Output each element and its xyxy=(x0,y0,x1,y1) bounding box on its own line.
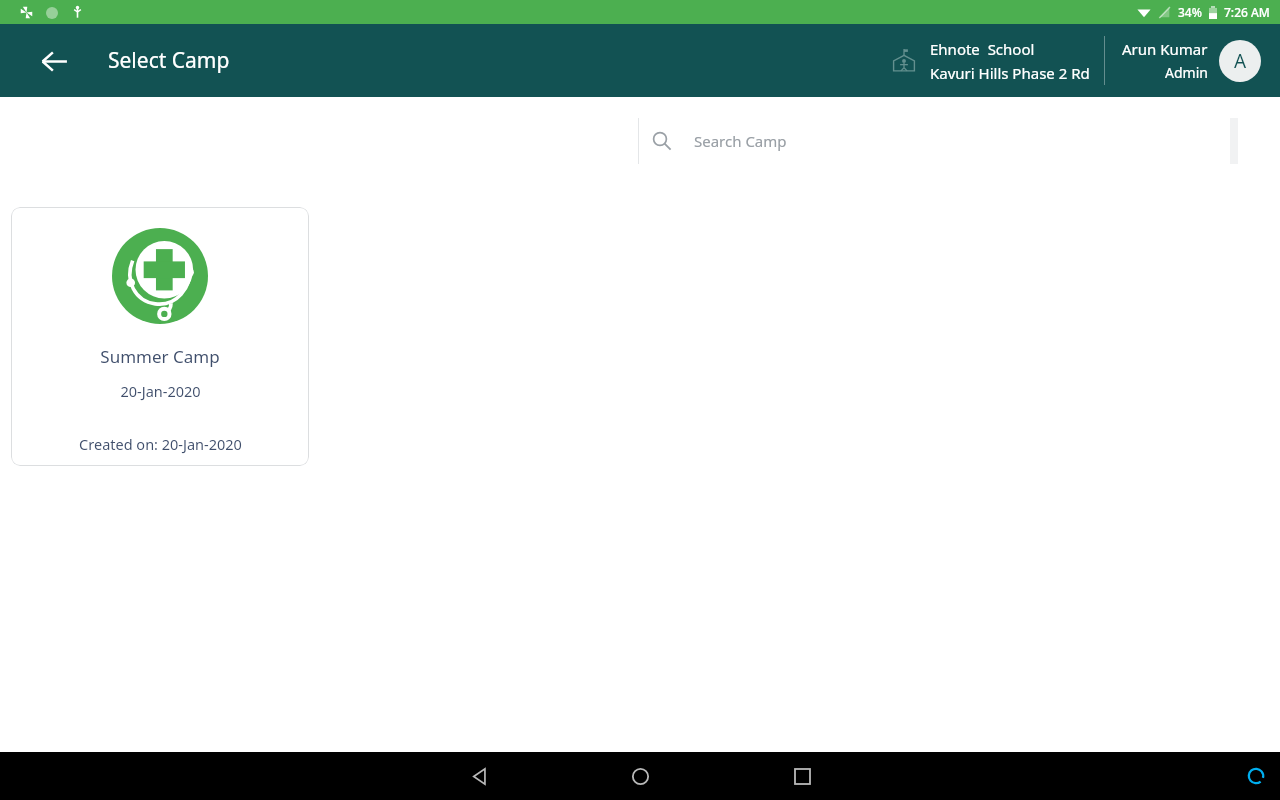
staticText: 7:26 AM xyxy=(1224,4,1270,20)
staticText: A xyxy=(1234,48,1247,74)
button[interactable]: Search xyxy=(638,118,1238,166)
button[interactable]: Back xyxy=(455,752,503,800)
staticText: 34% xyxy=(1178,4,1202,20)
button[interactable]: Back xyxy=(31,38,77,84)
button[interactable]: Arun Kumar xyxy=(1119,39,1264,82)
staticText: Select Camp xyxy=(108,46,230,75)
button[interactable]: Summer Camp xyxy=(11,207,309,466)
staticText: Created on: 20-Jan-2020 xyxy=(79,434,242,454)
staticText: Kavuri Hills Phase 2 Rd xyxy=(930,63,1090,83)
staticText: Arun Kumar xyxy=(1122,39,1208,59)
staticText: Search Camp xyxy=(694,131,787,151)
staticText: Admin xyxy=(1165,63,1208,82)
button[interactable]: Recent apps xyxy=(778,752,826,800)
staticText: Ehnote School xyxy=(930,39,1035,59)
other: School xyxy=(891,48,917,74)
button[interactable]: Home xyxy=(616,752,664,800)
button[interactable]: Assistant xyxy=(1232,752,1280,800)
other: Search xyxy=(652,131,672,151)
staticText: 20-Jan-2020 xyxy=(120,381,201,401)
staticText: Summer Camp xyxy=(100,345,220,368)
